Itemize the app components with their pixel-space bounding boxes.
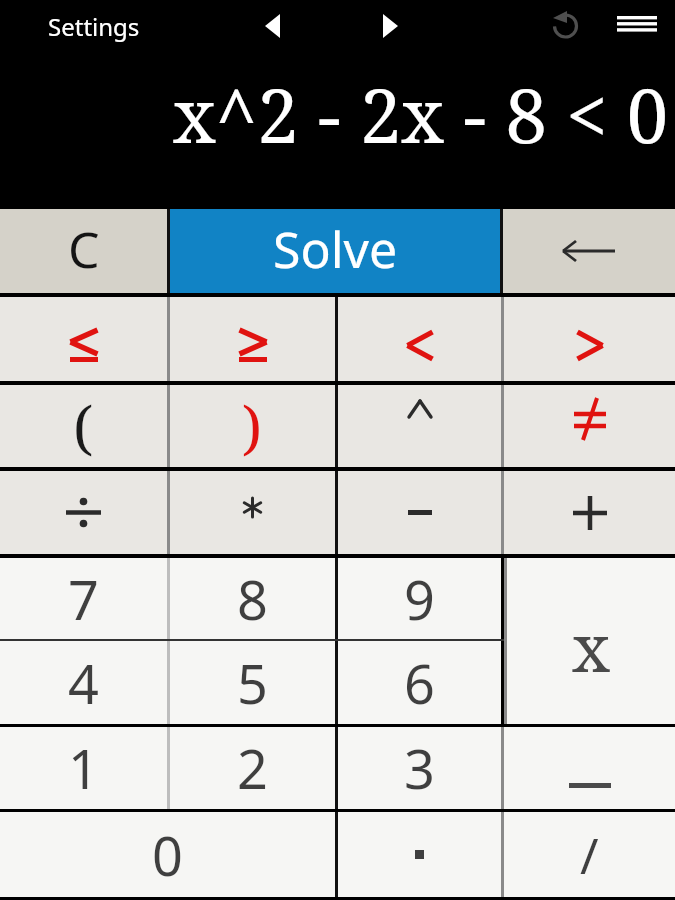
button[interactable]	[504, 385, 675, 467]
button[interactable]	[550, 11, 580, 41]
staticText: 6	[404, 646, 435, 720]
button[interactable]: 8	[170, 558, 335, 639]
staticText: x^2 - 2x - 8 < 0	[173, 64, 669, 165]
staticText: 1	[68, 731, 99, 805]
staticText: Solve	[273, 215, 398, 283]
button[interactable]	[617, 16, 657, 32]
button[interactable]: 2	[170, 727, 335, 809]
button[interactable]	[383, 14, 398, 38]
button[interactable]: )	[170, 385, 335, 467]
button[interactable]: Solve	[170, 209, 500, 293]
button[interactable]	[338, 471, 501, 554]
button[interactable]: Settings	[48, 10, 140, 43]
button[interactable]	[0, 297, 167, 381]
staticText: )	[242, 387, 263, 466]
button[interactable]: 1	[0, 727, 167, 809]
staticText: 0	[152, 818, 183, 892]
staticText: 9	[404, 562, 435, 636]
button[interactable]: 4	[0, 641, 167, 724]
button[interactable]: x	[507, 558, 675, 724]
button[interactable]: 0	[0, 812, 335, 897]
button[interactable]: 9	[338, 558, 501, 639]
staticText: 8	[237, 562, 268, 636]
button[interactable]: (	[0, 385, 167, 467]
staticText: 7	[68, 562, 99, 636]
button[interactable]	[504, 727, 675, 809]
staticText: Settings	[48, 10, 140, 43]
button[interactable]	[170, 471, 335, 554]
staticText: 2	[237, 731, 268, 805]
button[interactable]	[338, 297, 501, 381]
staticText: 4	[68, 646, 99, 720]
button[interactable]: C	[0, 209, 167, 293]
button[interactable]	[504, 297, 675, 381]
button[interactable]	[265, 14, 280, 38]
button[interactable]: 6	[338, 641, 501, 724]
staticText: (	[73, 387, 94, 466]
staticText: C	[68, 215, 100, 283]
button[interactable]	[503, 209, 675, 293]
button[interactable]	[338, 812, 501, 897]
button[interactable]: 3	[338, 727, 501, 809]
button[interactable]	[0, 471, 167, 554]
staticText: x	[572, 601, 611, 691]
button[interactable]	[170, 297, 335, 381]
button[interactable]	[504, 471, 675, 554]
staticText: /	[580, 821, 599, 889]
button[interactable]: 5	[170, 641, 335, 724]
button[interactable]	[338, 385, 501, 467]
button[interactable]: 7	[0, 558, 167, 639]
staticText: 3	[404, 731, 435, 805]
button[interactable]: /	[504, 812, 675, 897]
staticText: 5	[237, 646, 268, 720]
